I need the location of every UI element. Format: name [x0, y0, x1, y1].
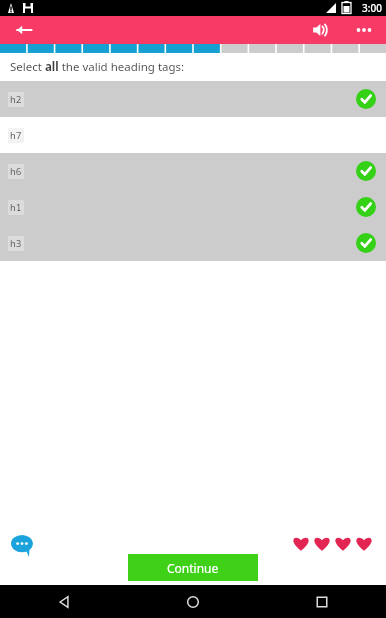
button[interactable]: h3: [0, 225, 386, 261]
button[interactable]: Back: [0, 585, 128, 618]
button[interactable]: h1: [0, 189, 386, 225]
staticText: Continue: [167, 560, 219, 576]
button[interactable]: Continue: [128, 554, 258, 581]
staticText: h6: [10, 165, 22, 178]
staticText: Select all the valid heading tags:: [10, 59, 185, 75]
staticText: h3: [10, 237, 22, 250]
staticText: h2: [10, 93, 22, 106]
staticText: h1: [10, 201, 22, 214]
button[interactable]: h2: [0, 81, 386, 117]
button[interactable]: More options: [350, 16, 378, 44]
button[interactable]: Back: [10, 16, 38, 44]
button[interactable]: Recent apps: [257, 585, 386, 618]
button[interactable]: h7: [0, 117, 386, 153]
button[interactable]: Hint: [8, 532, 36, 560]
button[interactable]: Home: [128, 585, 257, 618]
staticText: 3:00: [362, 1, 382, 15]
staticText: h7: [10, 129, 22, 142]
button[interactable]: Sound: [306, 16, 334, 44]
button[interactable]: h6: [0, 153, 386, 189]
